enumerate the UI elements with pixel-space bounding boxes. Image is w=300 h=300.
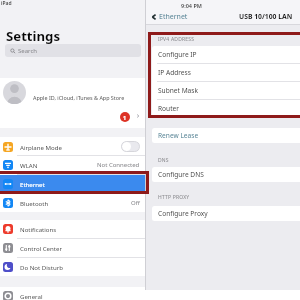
staticText: Search: [18, 47, 37, 55]
button[interactable]: Renew Lease: [152, 128, 300, 143]
button[interactable]: Search: [5, 44, 141, 57]
staticText: Bluetooth: [20, 199, 49, 207]
staticText: Ethernet: [20, 180, 45, 188]
button[interactable]: Ethernet: [150, 10, 188, 23]
button[interactable]: Airplane Mode: [0, 137, 145, 155]
staticText: IP Address: [158, 68, 191, 77]
staticText: Airplane Mode: [20, 143, 62, 151]
button[interactable]: General: [0, 287, 145, 300]
button[interactable]: Notifications: [0, 220, 145, 238]
staticText: Not Connected: [97, 161, 140, 169]
staticText: Apple ID, iCloud, iTunes & App Store: [33, 94, 125, 101]
staticText: 9:04 PM: [181, 2, 202, 9]
staticText: Control Center: [20, 244, 62, 252]
button[interactable]: Router: [152, 100, 300, 117]
staticText: Notifications: [20, 225, 57, 233]
button[interactable]: IP Address: [152, 64, 300, 81]
staticText: DNS: [158, 157, 169, 164]
button[interactable]: WLAN: [0, 156, 145, 174]
staticText: USB 10/100 LAN: [239, 12, 293, 21]
staticText: Subnet Mask: [158, 86, 198, 95]
staticText: HTTP PROXY: [158, 194, 190, 201]
staticText: Configure DNS: [158, 170, 204, 179]
staticText: Configure IP: [158, 50, 197, 59]
button[interactable]: Subnet Mask: [152, 82, 300, 99]
staticText: WLAN: [20, 161, 38, 169]
button[interactable]: Bluetooth: [0, 194, 145, 212]
button[interactable]: Control Center: [0, 239, 145, 257]
button[interactable]: Configure Proxy: [152, 206, 300, 221]
staticText: General: [20, 292, 43, 300]
button[interactable]: Ethernet: [0, 175, 145, 193]
staticText: Ethernet: [159, 12, 188, 22]
button[interactable]: Apple ID, iCloud, iTunes & App Store: [0, 78, 145, 128]
staticText: Settings: [6, 27, 61, 45]
staticText: iPad: [1, 0, 12, 7]
button[interactable]: Do Not Disturb: [0, 258, 145, 276]
staticText: Router: [158, 104, 179, 113]
staticText: Off: [131, 199, 140, 207]
button[interactable]: Configure IP: [152, 46, 300, 63]
staticText: Do Not Disturb: [20, 263, 63, 271]
staticText: IPV4 ADDRESS: [158, 36, 195, 43]
button[interactable]: Configure DNS: [152, 167, 300, 182]
staticText: 1: [123, 114, 127, 121]
staticText: Configure Proxy: [158, 209, 208, 218]
staticText: Renew Lease: [158, 131, 199, 140]
